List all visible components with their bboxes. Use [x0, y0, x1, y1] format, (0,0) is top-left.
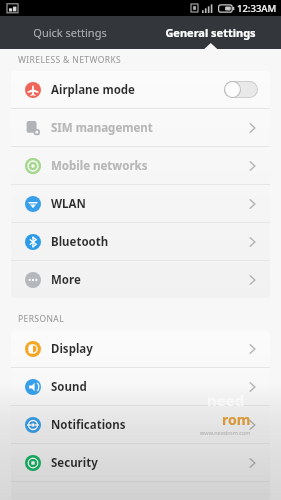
button[interactable]: Airplane mode — [11, 71, 270, 108]
staticText: 12:33AM — [237, 2, 277, 15]
button[interactable]: Notifications — [11, 406, 270, 443]
staticText: rom — [222, 410, 251, 429]
staticText: Sound — [51, 379, 87, 395]
staticText: PERSONAL — [18, 313, 65, 325]
button[interactable]: Security — [11, 444, 270, 481]
staticText: Security — [51, 455, 98, 471]
button[interactable]: More — [11, 261, 270, 298]
button[interactable]: Quick settings — [0, 16, 140, 49]
staticText: General settings — [165, 25, 256, 40]
button[interactable]: SIM management — [11, 109, 270, 146]
staticText: Airplane mode — [51, 82, 135, 98]
button[interactable]: Sound — [11, 368, 270, 405]
staticText: Bluetooth — [51, 234, 109, 250]
button[interactable]: WLAN — [11, 185, 270, 222]
staticText: www.needrom.com — [200, 429, 251, 436]
button[interactable]: Mobile networks — [11, 147, 270, 184]
staticText: WLAN — [51, 196, 86, 212]
staticText: Mobile networks — [51, 158, 148, 174]
staticText: Quick settings — [33, 25, 107, 40]
staticText: Notifications — [51, 417, 126, 433]
staticText: More — [51, 272, 81, 288]
button[interactable]: Bluetooth — [11, 223, 270, 260]
staticText: WIRELESS & NETWORKS — [18, 54, 122, 66]
staticText: SIM management — [51, 120, 153, 136]
button[interactable]: General settings — [140, 16, 281, 49]
button[interactable]: Display — [11, 330, 270, 367]
staticText: need — [207, 390, 245, 410]
staticText: Display — [51, 341, 93, 357]
